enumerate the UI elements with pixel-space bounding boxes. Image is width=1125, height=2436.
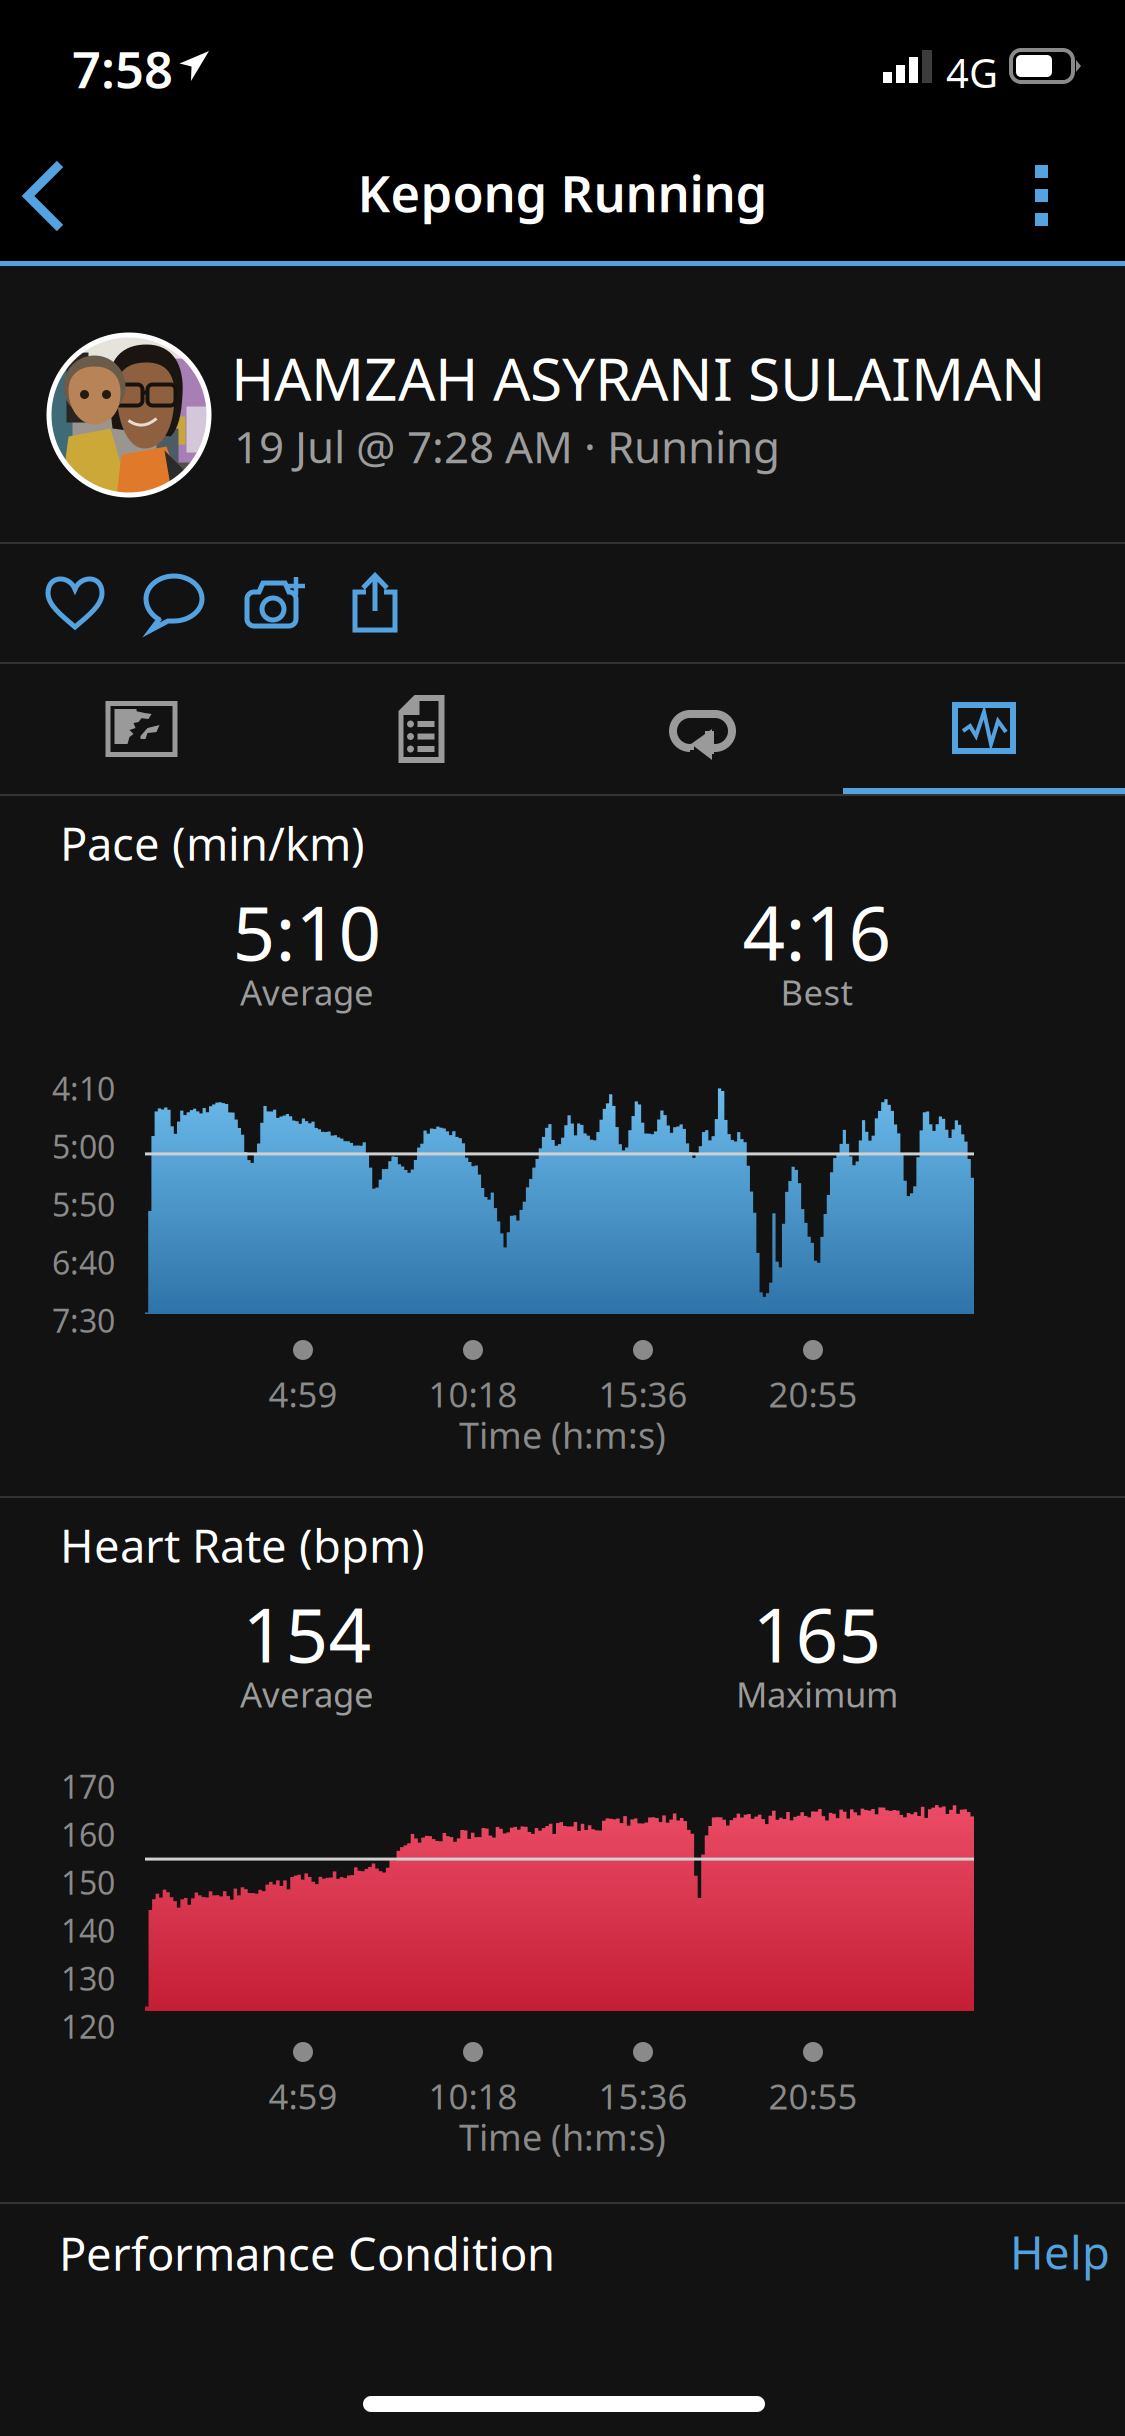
staticText: 19 Jul @ 7:28 AM · Running xyxy=(234,417,780,475)
staticText: Average xyxy=(240,969,374,1015)
staticText: 5:00 xyxy=(52,1125,115,1167)
button[interactable]: Details xyxy=(281,664,562,793)
staticText: 6:40 xyxy=(52,1241,115,1283)
staticText: 20:55 xyxy=(768,1371,857,1417)
button[interactable]: Back xyxy=(0,141,95,251)
staticText: Performance Condition xyxy=(59,2223,555,2283)
staticText: Time (h:m:s) xyxy=(459,2113,666,2161)
button[interactable]: Map xyxy=(0,664,281,793)
staticText: 165 xyxy=(752,1584,881,1683)
staticText: Kepong Running xyxy=(357,159,767,226)
button[interactable]: Share xyxy=(325,544,425,662)
staticText: 7:58 xyxy=(72,35,173,102)
staticText: 20:55 xyxy=(768,2073,857,2119)
staticText: Help xyxy=(1010,2222,1110,2282)
button[interactable]: Charts xyxy=(843,664,1125,794)
staticText: 4G xyxy=(946,46,998,99)
button[interactable]: Help xyxy=(0,2204,120,2274)
staticText: 4:16 xyxy=(742,882,891,981)
staticText: 120 xyxy=(61,2005,115,2047)
staticText: Pace (min/km) xyxy=(60,813,365,873)
staticText: 7:30 xyxy=(52,1299,115,1341)
staticText: 140 xyxy=(61,1909,115,1951)
button[interactable]: Laps xyxy=(562,664,843,793)
staticText: 5:10 xyxy=(232,882,381,981)
button[interactable]: Add photo xyxy=(225,544,325,662)
staticText: Time (h:m:s) xyxy=(459,1411,666,1459)
staticText: 160 xyxy=(61,1813,115,1855)
staticText: 4:10 xyxy=(52,1067,115,1109)
staticText: 130 xyxy=(61,1957,115,1999)
staticText: 15:36 xyxy=(598,1371,687,1417)
staticText: HAMZAH ASYRANI SULAIMAN xyxy=(231,339,1046,417)
staticText: 4:59 xyxy=(268,1371,337,1417)
button[interactable]: Like xyxy=(25,544,125,662)
staticText: 10:18 xyxy=(428,2073,517,2119)
button[interactable]: Comment xyxy=(125,544,225,662)
staticText: 15:36 xyxy=(598,2073,687,2119)
staticText: Heart Rate (bpm) xyxy=(60,1515,425,1575)
staticText: Best xyxy=(780,969,853,1015)
staticText: 150 xyxy=(61,1861,115,1903)
staticText: 170 xyxy=(61,1765,115,1807)
staticText: 4:59 xyxy=(268,2073,337,2119)
button[interactable]: More options xyxy=(990,133,1093,258)
staticText: 5:50 xyxy=(52,1183,115,1225)
staticText: 10:18 xyxy=(428,1371,517,1417)
staticText: Maximum xyxy=(736,1671,898,1717)
staticText: 154 xyxy=(242,1584,371,1683)
staticText: Average xyxy=(240,1671,374,1717)
